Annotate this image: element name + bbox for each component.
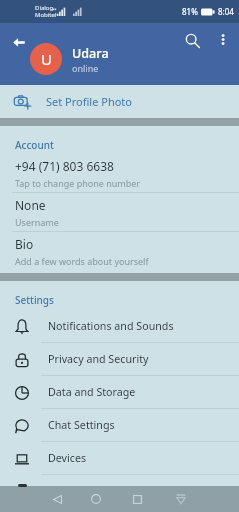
button[interactable]: None <box>0 193 239 231</box>
staticText: Tap to change phone number <box>15 177 141 189</box>
button[interactable]: Chat Settings <box>0 409 239 442</box>
button[interactable]: Search <box>177 25 207 55</box>
staticText: U <box>41 49 52 69</box>
staticText: 8:04 <box>218 6 234 17</box>
button[interactable]: More options <box>207 25 237 55</box>
staticText: 81% <box>182 6 198 17</box>
staticText: Account <box>15 138 54 152</box>
staticText: Username <box>15 216 59 228</box>
button[interactable]: Back <box>45 486 69 512</box>
staticText: Add a few words about yourself <box>15 255 149 267</box>
staticText: Chat Settings <box>48 418 115 433</box>
staticText: Udara <box>72 45 109 62</box>
button[interactable]: Devices <box>0 442 239 475</box>
staticText: +94 (71) 803 6638 <box>15 158 114 174</box>
button[interactable]: Privacy and Security <box>0 343 239 376</box>
button[interactable]: Data and Storage <box>0 376 239 409</box>
button[interactable]: Back <box>5 28 33 56</box>
staticText: Data and Storage <box>48 385 136 400</box>
staticText: online <box>72 62 99 74</box>
button[interactable]: Bio <box>0 232 239 270</box>
staticText: Settings <box>15 293 54 307</box>
button[interactable]: Set Profile Photo <box>0 85 239 118</box>
staticText: Devices <box>48 451 87 466</box>
button[interactable]: Recents <box>125 486 149 512</box>
staticText: Privacy and Security <box>48 352 149 367</box>
button[interactable]: Notifications and Sounds <box>0 310 239 343</box>
staticText: Bio <box>15 236 34 252</box>
staticText: Dialog Mobitel <box>35 4 57 19</box>
button[interactable]: +94 (71) 803 6638 <box>0 154 239 192</box>
button[interactable]: Home <box>84 486 108 512</box>
button[interactable]: Hide navigation bar <box>169 486 193 512</box>
staticText: None <box>15 197 46 213</box>
staticText: Set Profile Photo <box>46 94 132 109</box>
staticText: Notifications and Sounds <box>48 319 174 334</box>
